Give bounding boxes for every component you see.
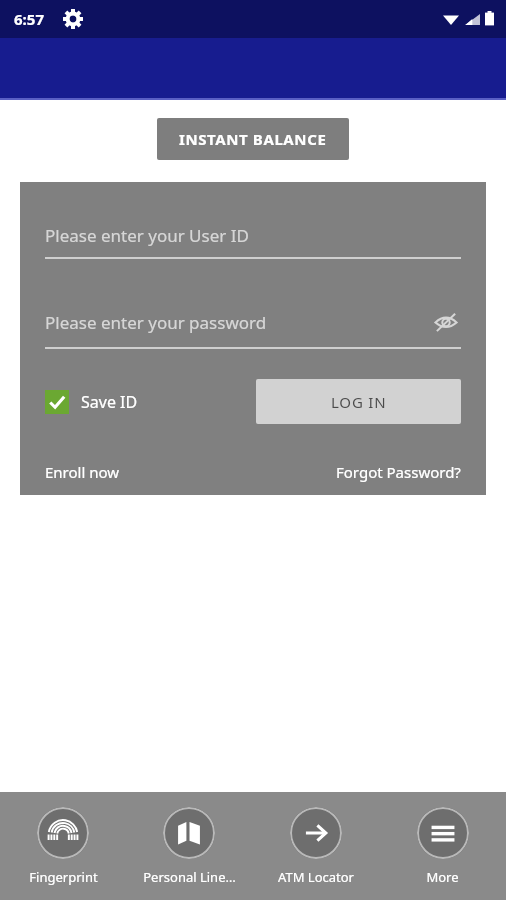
staticText: 6:57	[14, 9, 44, 29]
staticText: Please enter your User ID	[45, 224, 249, 247]
staticText: Save ID	[81, 391, 138, 413]
button[interactable]: INSTANT BALANCE	[157, 118, 349, 160]
staticText: LOG IN	[331, 392, 387, 412]
staticText: Fingerprint	[29, 868, 98, 886]
button[interactable]: Save ID	[45, 390, 138, 414]
button[interactable]: Fingerprint	[0, 792, 126, 900]
button[interactable]: ATM Locator	[252, 792, 379, 900]
button[interactable]: LOG IN	[256, 379, 461, 424]
staticText: Enroll now	[45, 462, 120, 482]
staticText: ATM Locator	[278, 868, 354, 886]
staticText: Personal Line…	[143, 868, 236, 886]
staticText: Forgot Password?	[336, 462, 461, 482]
button[interactable]: Personal Line…	[126, 792, 252, 900]
button[interactable]: Please enter your password	[45, 307, 461, 349]
button[interactable]: More	[379, 792, 506, 900]
button[interactable]: Show password	[431, 307, 461, 337]
staticText: Please enter your password	[45, 311, 267, 334]
button[interactable]: Enroll now	[45, 462, 120, 482]
staticText: INSTANT BALANCE	[179, 129, 327, 149]
button[interactable]: Please enter your User ID	[45, 224, 461, 259]
staticText: More	[426, 868, 459, 886]
button[interactable]: Forgot Password?	[336, 462, 461, 482]
